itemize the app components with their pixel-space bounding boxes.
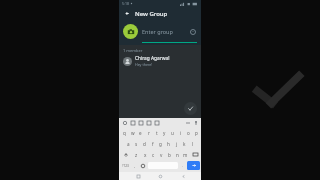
button[interactable]: t (153, 128, 160, 137)
button[interactable]: Language (139, 161, 147, 170)
staticText: u (171, 130, 174, 136)
button[interactable]: k (181, 139, 188, 148)
button[interactable]: z (132, 150, 140, 159)
staticText: i (180, 130, 182, 136)
staticText: p (195, 130, 198, 136)
staticText: h (167, 141, 170, 147)
button[interactable]: Backspace (190, 150, 200, 159)
staticText: , (134, 163, 136, 168)
button[interactable]: Voice input (193, 120, 198, 125)
button[interactable]: Chirag Agarwal (119, 55, 201, 67)
button[interactable]: b (166, 150, 173, 159)
button[interactable]: i (177, 128, 184, 137)
staticText: Chirag Agarwal (135, 55, 170, 62)
staticText: q (123, 130, 126, 136)
button[interactable]: o (185, 128, 192, 137)
button[interactable]: Home (156, 172, 164, 180)
staticText: w (131, 130, 135, 136)
staticText: o (187, 130, 190, 136)
button[interactable]: e (137, 128, 144, 137)
staticText: New Group (135, 10, 168, 18)
button[interactable]: j (173, 139, 180, 148)
button[interactable]: x (141, 150, 149, 159)
staticText: ?123 (122, 164, 129, 168)
staticText: 1 member (123, 48, 143, 53)
button[interactable]: f (149, 139, 156, 148)
staticText: . (182, 163, 184, 168)
button[interactable]: Create group (184, 102, 197, 115)
staticText: e (139, 130, 142, 136)
button[interactable]: Emoji (188, 27, 197, 36)
button[interactable]: r (145, 128, 152, 137)
button[interactable]: l (189, 139, 196, 148)
button[interactable]: d (141, 139, 148, 148)
staticText: t (156, 130, 158, 136)
button[interactable]: q (120, 128, 128, 137)
button[interactable]: v (158, 150, 165, 159)
button[interactable]: Enter group name (142, 28, 186, 35)
button[interactable]: n (174, 150, 181, 159)
button[interactable]: Enter (187, 161, 200, 170)
staticText: b (168, 152, 171, 158)
staticText: 5:18 (122, 1, 129, 6)
button[interactable]: p (193, 128, 200, 137)
button[interactable]: Add group icon (123, 24, 138, 39)
staticText: c (152, 152, 155, 158)
button[interactable]: Keyboard tool 2 (130, 120, 135, 125)
staticText: r (148, 130, 150, 136)
button[interactable]: g (157, 139, 164, 148)
staticText: j (176, 141, 178, 147)
button[interactable]: w (129, 128, 136, 137)
staticText: Hey there! (135, 62, 153, 67)
button[interactable]: a (124, 139, 132, 148)
staticText: g (159, 141, 162, 147)
button[interactable]: Keyboard tool 4 (146, 120, 151, 125)
button[interactable]: y (161, 128, 168, 137)
button[interactable]: c (150, 150, 157, 159)
staticText: m (183, 152, 188, 158)
staticText: Enter group name (142, 28, 186, 35)
staticText: x (144, 152, 147, 158)
button[interactable]: Shift (120, 150, 131, 159)
staticText: y (163, 130, 166, 136)
staticText: f (152, 141, 154, 147)
staticText: a (127, 141, 130, 147)
button[interactable]: s (133, 139, 140, 148)
staticText: z (135, 152, 138, 158)
button[interactable]: Keyboard tool 3 (138, 120, 143, 125)
button[interactable]: Back (179, 172, 187, 180)
button[interactable]: Back (122, 8, 133, 19)
button[interactable]: u (169, 128, 176, 137)
button[interactable]: , (131, 161, 138, 170)
staticText: v (160, 152, 163, 158)
staticText: k (183, 141, 186, 147)
staticText: d (143, 141, 146, 147)
button[interactable]: h (165, 139, 172, 148)
staticText: s (135, 141, 138, 147)
button[interactable]: ?123 (120, 161, 130, 170)
button[interactable]: More (185, 120, 190, 125)
staticText: n (176, 152, 179, 158)
button[interactable]: Keyboard tool 5 (154, 120, 159, 125)
button[interactable]: m (182, 150, 189, 159)
staticText: l (192, 141, 194, 147)
button[interactable]: Keyboard tool 1 (122, 120, 127, 125)
button[interactable]: Recents (134, 172, 142, 180)
